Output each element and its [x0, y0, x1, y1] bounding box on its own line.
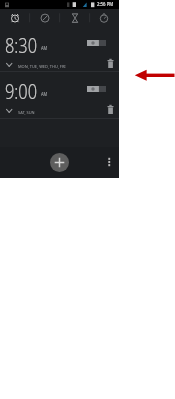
staticText: AM	[41, 91, 48, 98]
button[interactable]: More options	[104, 153, 115, 171]
button[interactable]: Delete alarm	[105, 102, 116, 116]
button[interactable]: Clock tab	[30, 9, 60, 26]
button[interactable]: 8:30	[0, 26, 119, 71]
button[interactable]: Add alarm	[50, 153, 69, 172]
staticText: 9:00	[5, 77, 38, 105]
staticText: AM	[41, 45, 48, 52]
button[interactable]: Stopwatch tab	[89, 9, 119, 26]
staticText: 8:30	[5, 31, 38, 59]
staticText: SAT, SUN	[18, 109, 35, 115]
button[interactable]: Delete alarm	[105, 56, 116, 70]
staticText: MON, TUE, WED, THU, FRI	[18, 63, 66, 69]
button[interactable]: 9:00	[0, 72, 119, 117]
button[interactable]: Alarm tab	[0, 9, 30, 26]
button[interactable]: Toggle alarm	[87, 40, 106, 46]
button[interactable]: Timer tab	[60, 9, 90, 26]
staticText: 2:56 PM	[97, 1, 113, 8]
button[interactable]: Toggle alarm	[87, 86, 106, 92]
